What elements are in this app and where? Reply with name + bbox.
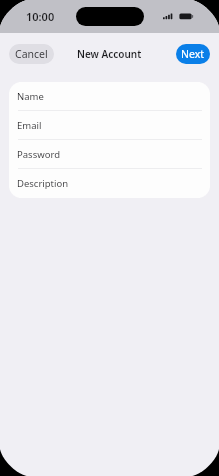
staticText: Cancel xyxy=(15,47,48,61)
button[interactable]: Email xyxy=(9,111,210,140)
staticText: 10:00 xyxy=(26,9,55,24)
staticText: Description xyxy=(17,177,69,190)
button[interactable]: Cancel xyxy=(9,44,54,64)
staticText: New Account xyxy=(77,47,142,61)
staticText: Name xyxy=(17,90,44,103)
button[interactable]: Password xyxy=(9,140,210,169)
button[interactable]: Next xyxy=(176,44,210,64)
staticText: Password xyxy=(17,148,60,161)
button[interactable]: Description xyxy=(9,169,210,198)
staticText: Email xyxy=(17,119,42,132)
button[interactable]: Name xyxy=(9,82,210,111)
other: Signal and battery status xyxy=(163,13,194,20)
staticText: Next xyxy=(181,47,205,61)
